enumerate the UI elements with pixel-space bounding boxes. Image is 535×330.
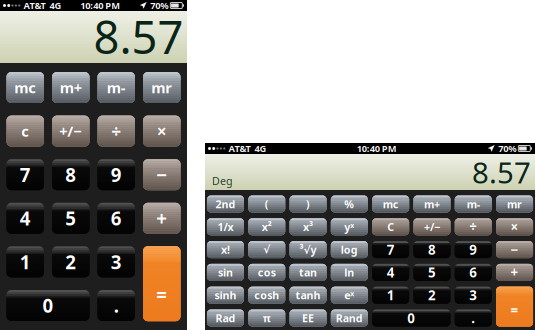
staticText: 70%	[498, 142, 516, 155]
button[interactable]: .	[455, 309, 492, 326]
button[interactable]: sin	[207, 264, 244, 281]
button[interactable]: 1	[6, 246, 44, 277]
button[interactable]: 2	[52, 246, 89, 277]
staticText: EE	[302, 311, 314, 325]
staticText: m-	[107, 78, 126, 97]
button[interactable]: 1	[372, 287, 409, 304]
button[interactable]: EE	[289, 309, 326, 326]
button[interactable]: tan	[289, 264, 326, 281]
button[interactable]: c	[6, 116, 44, 147]
staticText: mr	[507, 197, 522, 211]
button[interactable]: )	[289, 195, 326, 212]
button[interactable]: 8	[413, 241, 450, 258]
button[interactable]: cos	[248, 264, 285, 281]
button[interactable]: tanh	[289, 287, 326, 304]
button[interactable]: +	[143, 203, 180, 234]
button[interactable]: √	[248, 241, 285, 258]
staticText: 2	[428, 286, 436, 304]
button[interactable]: m-	[97, 72, 135, 103]
button[interactable]: yˣ	[331, 218, 368, 235]
button[interactable]: 6	[455, 264, 492, 281]
button[interactable]: ×	[496, 218, 533, 235]
button[interactable]: 4	[372, 264, 409, 281]
button[interactable]: %	[331, 195, 368, 212]
button[interactable]: log	[331, 241, 368, 258]
button[interactable]: 3	[97, 246, 135, 277]
button[interactable]: Rand	[331, 309, 368, 326]
button[interactable]: −	[496, 241, 533, 258]
button[interactable]: x³	[289, 218, 326, 235]
button[interactable]: ×	[143, 116, 180, 147]
button[interactable]: mc	[372, 195, 409, 212]
button[interactable]: π	[248, 309, 285, 326]
button[interactable]: 2	[413, 287, 450, 304]
button[interactable]: mr	[143, 72, 180, 103]
button[interactable]: x²	[248, 218, 285, 235]
staticText: cos	[258, 265, 276, 279]
staticText: ³√y	[299, 242, 316, 257]
button[interactable]: =	[496, 287, 533, 326]
button[interactable]: +	[496, 264, 533, 281]
button[interactable]: ³√y	[289, 241, 326, 258]
button[interactable]: m-	[455, 195, 492, 212]
button[interactable]: x!	[207, 241, 244, 258]
button[interactable]: cosh	[248, 287, 285, 304]
button[interactable]: +/−	[52, 116, 89, 147]
staticText: =	[510, 301, 518, 319]
staticText: yˣ	[344, 220, 354, 234]
staticText: 2nd	[215, 197, 235, 211]
staticText: ×	[157, 120, 167, 143]
button[interactable]: 8	[52, 159, 89, 190]
button[interactable]: mr	[496, 195, 533, 212]
staticText: AT&T	[23, 0, 45, 12]
staticText: −	[510, 241, 518, 258]
button[interactable]: C	[372, 218, 409, 235]
button[interactable]: ÷	[97, 116, 135, 147]
staticText: 10:40 PM	[357, 142, 397, 155]
staticText: C	[387, 220, 394, 234]
button[interactable]: sinh	[207, 287, 244, 304]
staticText: 3	[469, 286, 477, 304]
button[interactable]: (	[248, 195, 285, 212]
button[interactable]: m+	[413, 195, 450, 212]
button[interactable]: Rad	[207, 309, 244, 326]
button[interactable]: 1/x	[207, 218, 244, 235]
button[interactable]: 0	[6, 290, 89, 321]
staticText: Rand	[336, 311, 363, 325]
button[interactable]: m+	[52, 72, 89, 103]
staticText: 5	[428, 263, 436, 281]
staticText: x³	[303, 220, 313, 234]
staticText: 7	[387, 241, 395, 258]
button[interactable]: 5	[413, 264, 450, 281]
button[interactable]: 7	[6, 159, 44, 190]
button[interactable]: 9	[455, 241, 492, 258]
staticText: 8.57	[472, 152, 531, 191]
button[interactable]: 5	[52, 203, 89, 234]
button[interactable]: 2nd	[207, 195, 244, 212]
staticText: √	[263, 243, 270, 256]
button[interactable]: 0	[372, 309, 450, 326]
button[interactable]: −	[143, 159, 180, 190]
button[interactable]: 3	[455, 287, 492, 304]
staticText: mr	[151, 78, 172, 97]
button[interactable]: ÷	[455, 218, 492, 235]
staticText: x²	[262, 220, 272, 234]
staticText: x!	[221, 242, 230, 257]
staticText: ÷	[469, 218, 477, 236]
button[interactable]: mc	[6, 72, 44, 103]
button[interactable]: eˣ	[331, 287, 368, 304]
button[interactable]: +/−	[413, 218, 450, 235]
staticText: 10:40 PM	[80, 0, 120, 12]
button[interactable]: 9	[97, 159, 135, 190]
staticText: m-	[467, 197, 480, 211]
button[interactable]: 7	[372, 241, 409, 258]
staticText: ×	[510, 218, 518, 236]
button[interactable]: 4	[6, 203, 44, 234]
button[interactable]: .	[97, 290, 135, 321]
staticText: .	[471, 309, 475, 327]
staticText: m+	[60, 78, 82, 97]
button[interactable]: 6	[97, 203, 135, 234]
button[interactable]: ln	[331, 264, 368, 281]
staticText: 1	[387, 286, 395, 304]
button[interactable]: =	[143, 246, 180, 321]
